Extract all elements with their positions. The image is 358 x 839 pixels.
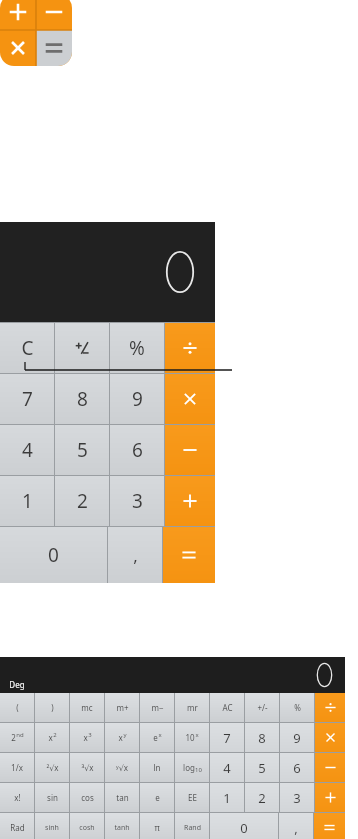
staticText: ³√x xyxy=(81,762,94,773)
button[interactable]: Subtract xyxy=(165,425,215,475)
button[interactable]: 8 xyxy=(245,723,279,752)
button[interactable]: tan xyxy=(105,783,139,812)
staticText: 8 xyxy=(258,729,266,747)
button[interactable]: 9 xyxy=(110,374,164,424)
button[interactable]: 3 xyxy=(280,783,314,812)
button[interactable]: x xyxy=(105,723,139,752)
button[interactable]: Multiply xyxy=(315,723,345,752)
button[interactable]: 2 xyxy=(55,476,109,526)
button[interactable]: , xyxy=(279,813,313,839)
staticText: 4 xyxy=(22,437,33,463)
staticText: , xyxy=(133,544,138,567)
staticText: cos xyxy=(81,792,94,803)
staticText: 1 xyxy=(22,488,33,514)
button[interactable]: +/- xyxy=(245,693,279,722)
button[interactable]: % xyxy=(280,693,314,722)
button[interactable]: 1/x xyxy=(0,753,34,782)
button[interactable]: x xyxy=(70,723,104,752)
button[interactable]: 2 xyxy=(0,723,34,752)
staticText: x xyxy=(195,731,199,739)
button[interactable]: Rad xyxy=(0,813,34,839)
button[interactable]: ʸ√x xyxy=(105,753,139,782)
staticText: AC xyxy=(222,702,233,713)
staticText: e xyxy=(155,792,160,803)
button[interactable]: EE xyxy=(175,783,209,812)
button[interactable]: sinh xyxy=(35,813,69,839)
button[interactable]: 9 xyxy=(280,723,314,752)
button[interactable]: tanh xyxy=(105,813,139,839)
button[interactable]: ln xyxy=(140,753,174,782)
staticText: x xyxy=(83,732,88,743)
button[interactable]: 0 xyxy=(0,527,107,583)
button[interactable]: Divide xyxy=(165,323,215,373)
staticText: Deg xyxy=(9,679,25,690)
button[interactable]: Add xyxy=(315,783,345,812)
button[interactable]: Divide xyxy=(315,693,345,722)
button[interactable]: 7 xyxy=(210,723,244,752)
button[interactable]: π xyxy=(140,813,174,839)
button[interactable]: Rand xyxy=(175,813,209,839)
button[interactable]: Multiply xyxy=(165,374,215,424)
button[interactable]: 7 xyxy=(0,374,54,424)
staticText: +/- xyxy=(257,702,268,713)
button[interactable]: ³√x xyxy=(70,753,104,782)
button[interactable]: Add xyxy=(165,476,215,526)
button[interactable]: 6 xyxy=(110,425,164,475)
button[interactable]: e xyxy=(140,723,174,752)
staticText: cosh xyxy=(79,823,95,833)
button[interactable]: m− xyxy=(140,693,174,722)
button[interactable]: , xyxy=(108,527,162,583)
button[interactable]: 1 xyxy=(0,476,54,526)
button[interactable]: mc xyxy=(70,693,104,722)
button[interactable]: C xyxy=(0,323,54,373)
button[interactable]: ) xyxy=(35,693,69,722)
button[interactable]: m+ xyxy=(105,693,139,722)
button[interactable]: 4 xyxy=(210,753,244,782)
button[interactable]: Equals xyxy=(163,527,215,583)
staticText: % xyxy=(294,702,301,713)
staticText: C xyxy=(21,335,34,361)
button[interactable]: Calculator app icon xyxy=(0,0,72,66)
button[interactable]: 8 xyxy=(55,374,109,424)
button[interactable]: Subtract xyxy=(315,753,345,782)
button[interactable]: ²√x xyxy=(35,753,69,782)
staticText: 0 xyxy=(48,542,59,568)
button[interactable]: cos xyxy=(70,783,104,812)
staticText: ( xyxy=(16,702,19,713)
staticText: mc xyxy=(81,702,93,713)
staticText: Rand xyxy=(184,823,201,833)
button[interactable]: x! xyxy=(0,783,34,812)
button[interactable]: ( xyxy=(0,693,34,722)
button[interactable]: 6 xyxy=(280,753,314,782)
button[interactable]: Equals xyxy=(314,813,345,839)
staticText: π xyxy=(154,822,160,833)
button[interactable]: 3 xyxy=(110,476,164,526)
button[interactable]: 10 xyxy=(175,723,209,752)
staticText: 2 xyxy=(77,488,88,514)
button[interactable]: mr xyxy=(175,693,209,722)
staticText: x xyxy=(118,732,123,743)
button[interactable]: e xyxy=(140,783,174,812)
staticText: 6 xyxy=(293,759,301,777)
button[interactable]: Plus minus xyxy=(55,323,109,373)
button[interactable]: % xyxy=(110,323,164,373)
staticText: EE xyxy=(188,792,197,803)
button[interactable]: 5 xyxy=(245,753,279,782)
button[interactable]: 1 xyxy=(210,783,244,812)
staticText: tan xyxy=(116,792,129,803)
button[interactable]: cosh xyxy=(70,813,104,839)
staticText: m+ xyxy=(116,702,129,713)
button[interactable]: 5 xyxy=(55,425,109,475)
staticText: sin xyxy=(47,792,58,803)
button[interactable]: 2 xyxy=(245,783,279,812)
button[interactable]: x xyxy=(35,723,69,752)
staticText: 3 xyxy=(132,488,143,514)
button[interactable]: AC xyxy=(210,693,244,722)
button[interactable]: 0 xyxy=(210,813,278,839)
staticText: 1 xyxy=(223,789,231,807)
button[interactable]: sin xyxy=(35,783,69,812)
staticText: log xyxy=(183,762,195,773)
button[interactable]: log xyxy=(175,753,209,782)
staticText: 10 xyxy=(185,732,195,743)
button[interactable]: 4 xyxy=(0,425,54,475)
